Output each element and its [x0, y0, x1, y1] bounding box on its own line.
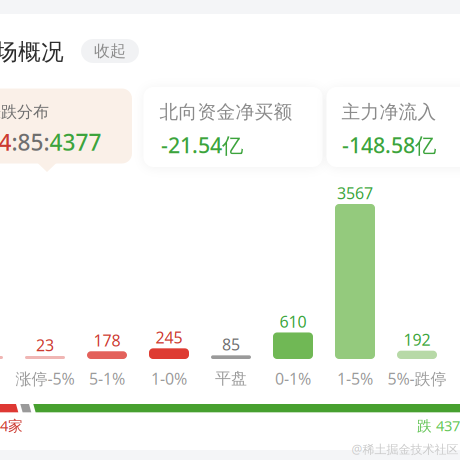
staticText: -148.58亿 [342, 131, 436, 159]
staticText: : [43, 127, 49, 157]
staticText: @稀土掘金技术社区 [351, 441, 458, 457]
staticText: 4377 [49, 127, 101, 157]
button[interactable]: 收起 [81, 39, 139, 63]
staticText: 3567 [337, 182, 373, 204]
staticText: 5%-跌停 [387, 368, 446, 389]
staticText: 1-0% [151, 368, 187, 389]
staticText: 涨跌分布 [0, 102, 49, 122]
staticText: 1-5% [337, 368, 373, 389]
staticText: 0-1% [275, 368, 311, 389]
staticText: 192 [403, 329, 430, 350]
staticText: 主力净流入 [341, 100, 436, 123]
staticText: 北向资金净买额 [159, 100, 292, 123]
staticText: 涨停-5% [15, 368, 74, 389]
staticText: 涨 964家 [0, 416, 23, 435]
staticText: : [11, 127, 17, 157]
staticText: -21.54亿 [161, 131, 243, 159]
staticText: 85 [222, 334, 240, 355]
staticText: 23 [36, 334, 54, 356]
staticText: 964 [0, 127, 11, 157]
staticText: 市场概况 [0, 38, 64, 66]
staticText: 245 [155, 327, 182, 348]
staticText: 178 [93, 330, 120, 351]
staticText: 5-1% [89, 368, 125, 389]
staticText: 610 [279, 311, 306, 332]
staticText: 85 [17, 127, 43, 157]
staticText: 跌 4377家 [417, 416, 460, 435]
staticText: 平盘 [215, 369, 247, 388]
staticText: 收起 [94, 41, 126, 61]
